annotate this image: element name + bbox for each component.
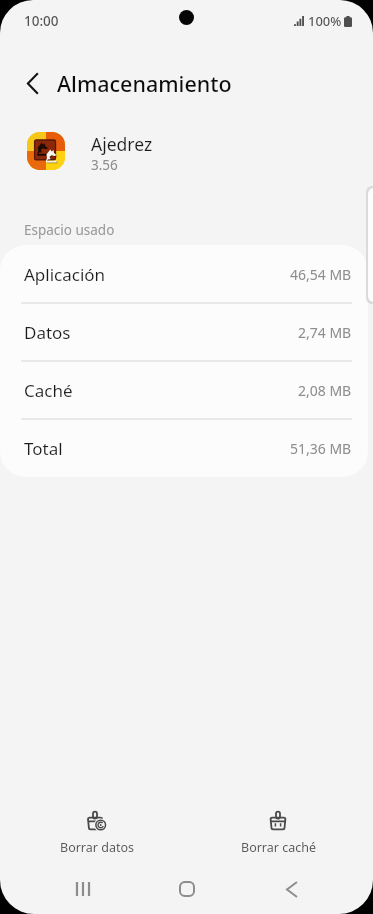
staticText: Borrar caché (241, 839, 316, 856)
staticText: 100% (308, 12, 342, 30)
staticText: 2,08 MB (298, 381, 352, 400)
staticText: Ajedrez (91, 132, 153, 156)
button[interactable]: Recents (59, 865, 107, 913)
staticText: Datos (24, 321, 71, 344)
staticText: Borrar datos (60, 839, 134, 856)
staticText: 51,36 MB (290, 439, 352, 458)
staticText: Caché (24, 379, 73, 402)
button[interactable]: Borrar caché (218, 800, 338, 856)
button[interactable]: Back (268, 865, 316, 913)
staticText: 10:00 (24, 12, 59, 30)
staticText: 46,54 MB (290, 265, 352, 284)
button[interactable]: Borrar datos (37, 800, 157, 856)
button[interactable]: Caché (0, 361, 368, 419)
button[interactable]: Back (10, 61, 54, 105)
button[interactable]: Total (0, 419, 368, 477)
staticText: Total (24, 437, 63, 460)
staticText: Aplicación (24, 263, 106, 286)
button[interactable]: Home (163, 865, 211, 913)
staticText: 2,74 MB (298, 323, 352, 342)
staticText: Espacio usado (24, 221, 115, 239)
button[interactable]: Datos (0, 303, 368, 361)
button[interactable]: Aplicación (0, 245, 368, 303)
staticText: Almacenamiento (57, 69, 232, 98)
staticText: 3.56 (91, 156, 118, 174)
